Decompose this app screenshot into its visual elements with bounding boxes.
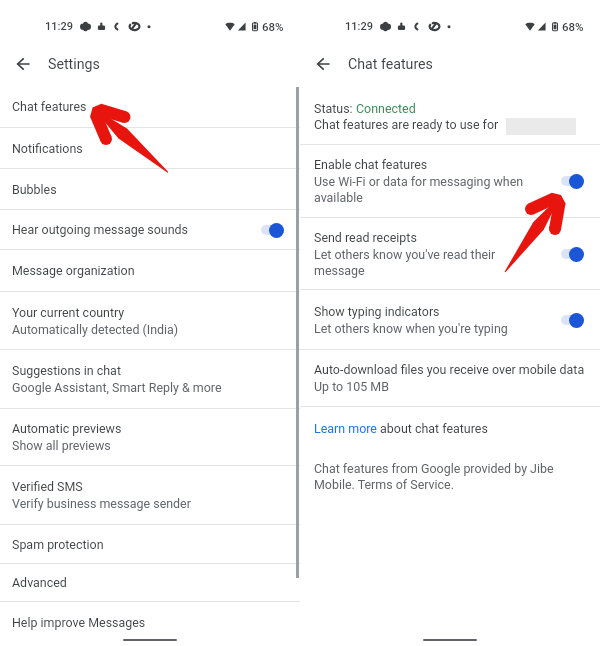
staticText: Automatic previews	[12, 421, 122, 436]
button[interactable]: Learn more	[300, 407, 600, 449]
button[interactable]	[259, 222, 285, 238]
staticText: Message organization	[12, 263, 135, 278]
staticText: 68%	[562, 20, 584, 33]
staticText: Use Wi-Fi or data for messaging when ava…	[314, 174, 528, 205]
button[interactable]: Advanced	[0, 564, 300, 601]
staticText: Hear outgoing message sounds	[12, 222, 189, 237]
button[interactable]: Notifications	[0, 128, 300, 168]
staticText: Chat features are ready to use for	[314, 117, 499, 132]
button[interactable]: Suggestions in chat	[0, 350, 300, 408]
button[interactable]: Spam protection	[0, 525, 300, 563]
staticText: Show typing indicators	[314, 304, 440, 319]
staticText: Spam protection	[12, 537, 104, 552]
staticText: Settings	[48, 56, 100, 73]
button[interactable]: Show typing indicators	[300, 290, 600, 349]
staticText: Up to 105 MB	[314, 379, 389, 394]
button[interactable]: Automatic previews	[0, 409, 300, 465]
button[interactable]: Message organization	[0, 250, 300, 291]
staticText: Advanced	[12, 575, 67, 590]
staticText: Learn more	[314, 421, 377, 436]
button[interactable]: Hear outgoing message sounds	[0, 210, 300, 249]
staticText: Enable chat features	[314, 157, 428, 172]
staticText: Let others know you've read their messag…	[314, 247, 528, 278]
button[interactable]: Back	[308, 49, 338, 79]
staticText: 68%	[262, 20, 284, 33]
staticText: about chat features	[377, 421, 488, 436]
staticText: Bubbles	[12, 182, 57, 197]
staticText: Verify business message sender	[12, 496, 191, 511]
staticText: Verified SMS	[12, 479, 83, 494]
staticText: Chat features from Google provided by Ji…	[314, 461, 562, 492]
button[interactable]: Bubbles	[0, 169, 300, 209]
staticText: Google Assistant, Smart Reply & more	[12, 380, 222, 395]
staticText: Status:	[314, 101, 356, 116]
staticText: Let others know when you're typing	[314, 321, 508, 336]
button[interactable]: Help improve Messages	[0, 602, 300, 642]
button[interactable]	[559, 246, 585, 262]
button[interactable]: Verified SMS	[0, 466, 300, 524]
staticText: Chat features	[12, 99, 87, 114]
staticText: Send read receipts	[314, 230, 417, 245]
staticText: Chat features	[348, 56, 433, 73]
staticText: Auto-download files you receive over mob…	[314, 362, 585, 377]
staticText: Help improve Messages	[12, 615, 146, 630]
staticText: Show all previews	[12, 438, 111, 453]
button[interactable]: Back	[8, 49, 38, 79]
button[interactable]: Auto-download files you receive over mob…	[300, 350, 600, 406]
staticText: Your current country	[12, 305, 125, 320]
staticText: 11:29	[345, 20, 373, 33]
staticText: Connected	[356, 101, 416, 116]
button[interactable]: Send read receipts	[300, 218, 600, 289]
staticText: Notifications	[12, 141, 83, 156]
button[interactable]: Chat features	[0, 86, 300, 127]
button[interactable]: Your current country	[0, 292, 300, 349]
button[interactable]	[559, 173, 585, 189]
staticText: Automatically detected (India)	[12, 322, 179, 337]
staticText: 11:29	[45, 20, 73, 33]
button[interactable]	[559, 312, 585, 328]
staticText: Suggestions in chat	[12, 363, 121, 378]
button[interactable]: Enable chat features	[300, 145, 600, 217]
